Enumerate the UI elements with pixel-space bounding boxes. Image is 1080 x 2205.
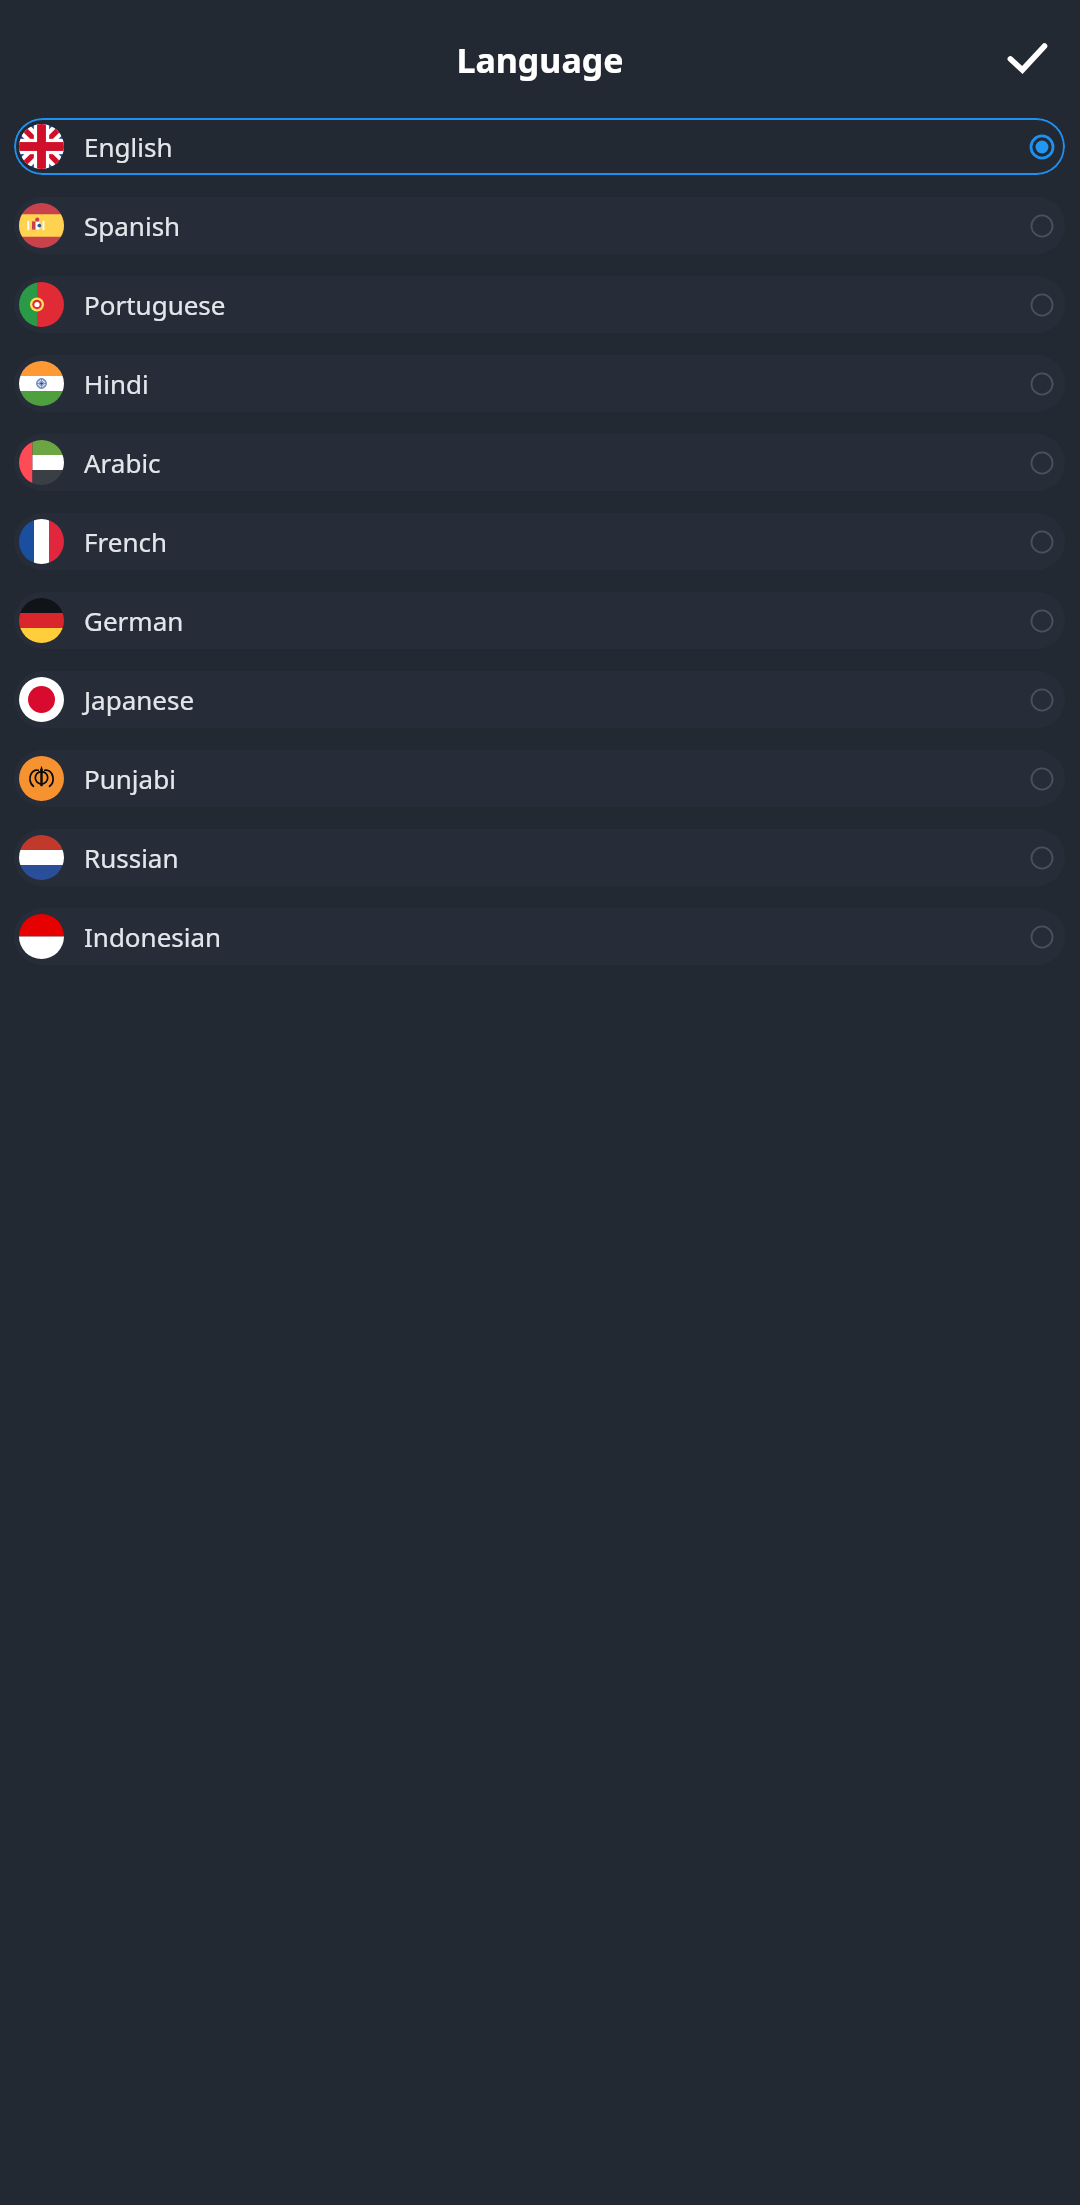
- button[interactable]: French: [14, 513, 1065, 570]
- button[interactable]: Hindi: [14, 355, 1065, 412]
- staticText: Russian: [84, 840, 179, 875]
- staticText: Indonesian: [84, 919, 222, 954]
- button[interactable]: German: [14, 592, 1065, 649]
- staticText: Portuguese: [84, 287, 226, 322]
- button[interactable]: Japanese: [14, 671, 1065, 728]
- button[interactable]: Portuguese: [14, 276, 1065, 333]
- staticText: Hindi: [84, 366, 149, 401]
- staticText: English: [84, 129, 173, 164]
- staticText: Punjabi: [84, 761, 176, 796]
- staticText: French: [84, 524, 167, 559]
- staticText: Spanish: [84, 208, 181, 243]
- button[interactable]: Spanish: [14, 197, 1065, 254]
- button[interactable]: English: [14, 118, 1065, 175]
- staticText: Japanese: [84, 682, 195, 717]
- button[interactable]: Confirm: [996, 28, 1058, 90]
- button[interactable]: Russian: [14, 829, 1065, 886]
- button[interactable]: Indonesian: [14, 908, 1065, 965]
- button[interactable]: Punjabi: [14, 750, 1065, 807]
- staticText: Language: [456, 37, 624, 83]
- button[interactable]: Arabic: [14, 434, 1065, 491]
- staticText: German: [84, 603, 184, 638]
- staticText: Arabic: [84, 445, 161, 480]
